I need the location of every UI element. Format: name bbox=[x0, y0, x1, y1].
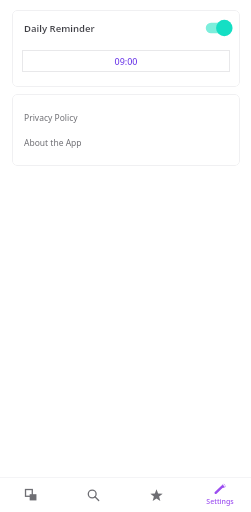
button[interactable]: Daily reminder toggle bbox=[201, 17, 235, 39]
staticText: 09:00 bbox=[114, 55, 138, 67]
button[interactable]: Search bbox=[62, 478, 125, 512]
button[interactable]: Favorites bbox=[125, 478, 188, 512]
button[interactable]: Privacy Policy bbox=[12, 111, 240, 125]
button[interactable]: About the App bbox=[12, 136, 240, 150]
button[interactable]: 09:00 bbox=[22, 50, 230, 72]
staticText: Settings bbox=[206, 497, 234, 507]
staticText: Privacy Policy bbox=[24, 112, 78, 124]
staticText: About the App bbox=[24, 137, 82, 149]
button[interactable]: Settings bbox=[188, 478, 251, 512]
button[interactable]: Dashboard bbox=[0, 478, 62, 512]
staticText: Daily Reminder bbox=[24, 22, 95, 35]
